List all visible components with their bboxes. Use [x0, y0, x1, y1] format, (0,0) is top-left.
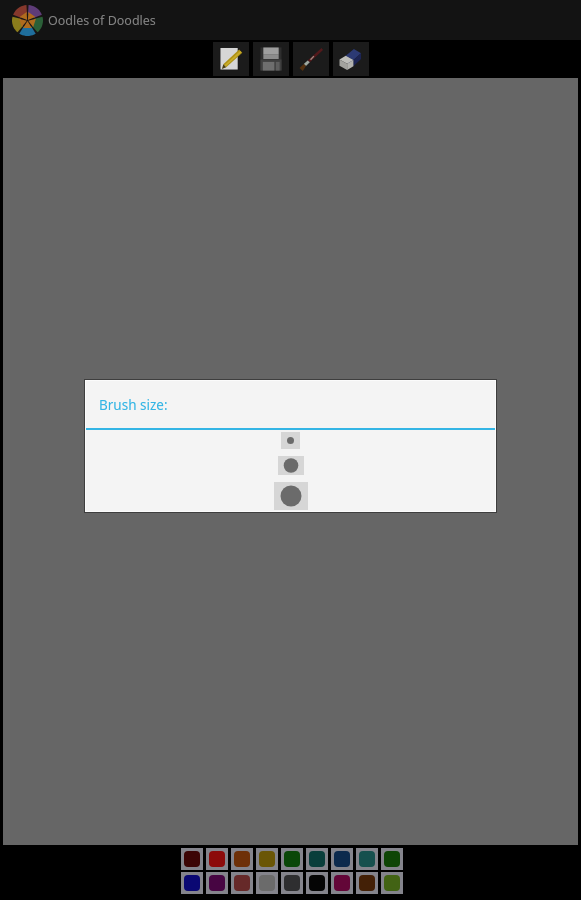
button[interactable]: Brush — [293, 42, 329, 76]
button[interactable]: Brush size — [274, 482, 308, 510]
button[interactable]: Eraser — [333, 42, 369, 76]
button[interactable]: Colour — [234, 851, 250, 867]
button[interactable]: Colour — [359, 851, 375, 867]
button[interactable]: New drawing — [213, 42, 249, 76]
button[interactable]: Brush size — [281, 432, 300, 449]
button[interactable]: Save drawing — [253, 42, 289, 76]
button[interactable]: Colour — [184, 851, 200, 867]
button[interactable]: Colour — [284, 851, 300, 867]
button[interactable]: Colour — [184, 875, 200, 891]
button[interactable]: Colour — [209, 875, 225, 891]
button[interactable]: Colour — [259, 875, 275, 891]
staticText: Brush size: — [99, 396, 168, 414]
button[interactable]: Colour — [384, 851, 400, 867]
button[interactable]: Colour — [284, 875, 300, 891]
button[interactable]: Colour — [334, 851, 350, 867]
button[interactable]: Colour — [259, 851, 275, 867]
button[interactable]: Colour — [209, 851, 225, 867]
button[interactable]: Colour — [334, 875, 350, 891]
button[interactable]: Brush size — [278, 456, 304, 475]
button[interactable]: Colour — [309, 851, 325, 867]
button[interactable]: Colour — [384, 875, 400, 891]
button[interactable]: Colour — [309, 875, 325, 891]
button[interactable]: Colour — [234, 875, 250, 891]
button[interactable]: Colour — [359, 875, 375, 891]
staticText: Oodles of Doodles — [48, 12, 156, 29]
